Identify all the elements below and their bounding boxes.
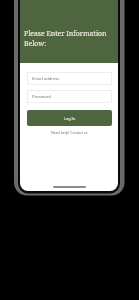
button[interactable]: Log In	[27, 110, 112, 126]
button[interactable]: Password	[27, 90, 112, 103]
staticText: Please Enter Information Below:	[24, 29, 107, 48]
staticText: Password	[32, 94, 51, 100]
button[interactable]: Need help? Contact us	[51, 130, 88, 135]
button[interactable]: Email address	[27, 72, 112, 85]
staticText: Log In	[64, 116, 76, 121]
staticText: Email address	[32, 76, 60, 82]
